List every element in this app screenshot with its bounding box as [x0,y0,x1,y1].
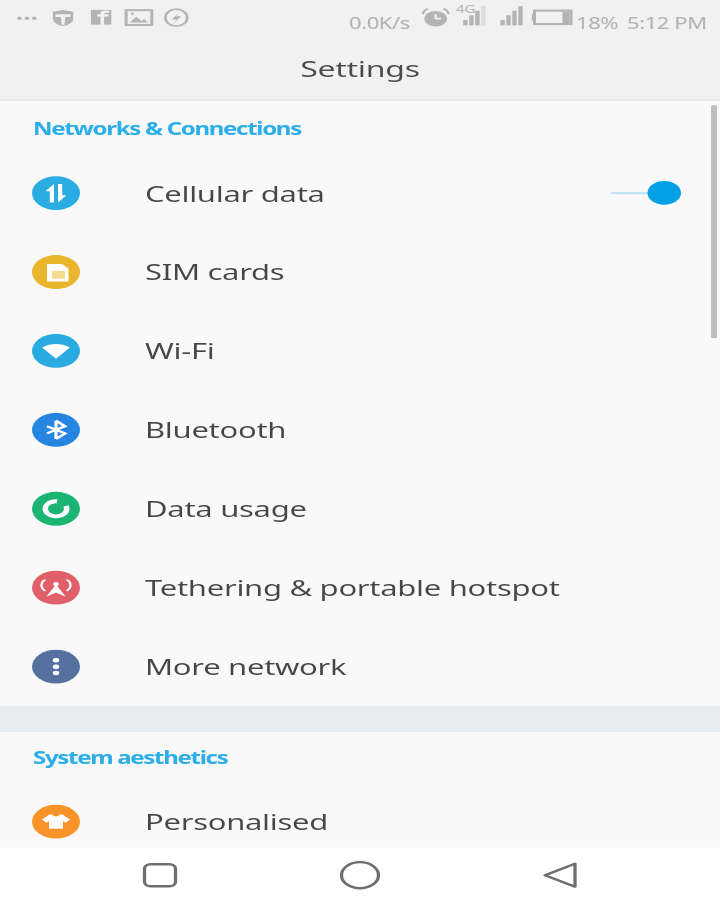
button[interactable]: Back [500,848,620,902]
button[interactable]: Cellular data on [600,168,696,218]
staticText: 5:12 PM [627,12,707,33]
staticText: System aesthetics [33,746,228,769]
button[interactable]: Data usage [0,469,720,548]
button[interactable]: Networks & Connections [33,117,301,140]
staticText: 18% [576,12,619,33]
staticText: Cellular data [145,178,325,208]
staticText: Personalised [145,807,328,836]
button[interactable]: Cellular data [0,154,720,232]
staticText: Bluetooth [145,415,287,445]
staticText: Wi-Fi [145,336,215,366]
button[interactable]: System aesthetics [33,746,228,769]
staticText: 0.0K/s [349,12,411,33]
staticText: 4G [456,2,476,16]
button[interactable]: Bluetooth [0,390,720,469]
button[interactable]: More network [0,627,720,706]
staticText: More network [145,652,347,681]
staticText: Settings [0,53,720,84]
button[interactable]: SIM cards [0,232,720,311]
button[interactable]: Recent apps [100,848,220,902]
staticText: Networks & Connections [33,117,301,140]
button[interactable]: Wi-Fi [0,311,720,390]
button[interactable]: Personalised [0,788,720,854]
staticText: Tethering & portable hotspot [145,573,560,602]
button[interactable]: Tethering & portable hotspot [0,548,720,627]
staticText: SIM cards [145,257,285,287]
button[interactable]: Home [300,848,420,902]
staticText: Data usage [145,494,307,524]
